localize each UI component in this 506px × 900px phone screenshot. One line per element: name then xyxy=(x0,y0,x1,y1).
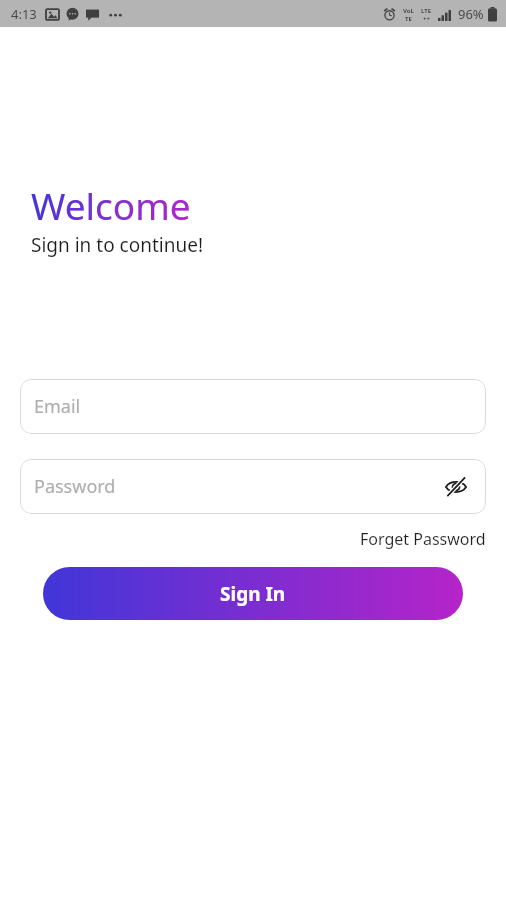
staticText: Sign in to continue! xyxy=(31,232,204,258)
staticText: 4:13 xyxy=(11,5,37,23)
button[interactable]: Sign In xyxy=(43,567,463,620)
staticText: ++ xyxy=(423,15,430,21)
staticText: Sign In xyxy=(220,581,286,607)
button[interactable]: Password xyxy=(20,459,486,514)
staticText: TE xyxy=(405,15,412,21)
staticText: Forget Password xyxy=(360,528,486,550)
staticText: Password xyxy=(34,474,116,499)
staticText: VoL xyxy=(403,7,414,15)
button[interactable]: Show password xyxy=(440,471,472,503)
button[interactable]: Forget Password xyxy=(358,525,488,553)
staticText: Email xyxy=(34,394,81,419)
button[interactable]: Email xyxy=(20,379,486,434)
staticText: LTE xyxy=(421,7,432,15)
staticText: Welcome xyxy=(31,180,191,230)
staticText: 96% xyxy=(458,5,484,23)
